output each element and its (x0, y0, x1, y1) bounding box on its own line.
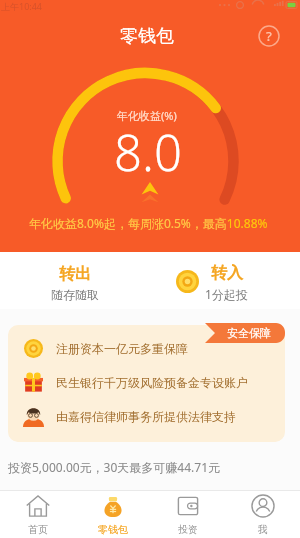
staticText: 上午10:44 (1, 0, 43, 11)
staticText: 随存随取 (51, 287, 99, 302)
staticText: 转入 (211, 263, 243, 283)
staticText: 由嘉得信律师事务所提供法律支持 (56, 409, 236, 424)
staticText: 民生银行千万级风险预备金专设账户 (56, 375, 248, 390)
button[interactable]: 零钱包 (75, 491, 150, 538)
button[interactable]: 帮助 (254, 21, 284, 51)
staticText: 注册资本一亿元多重保障 (56, 341, 188, 356)
button[interactable]: 转出 (0, 254, 150, 311)
staticText: 零钱包 (98, 523, 128, 536)
button[interactable]: 我 (225, 491, 300, 538)
staticText: ? (266, 27, 272, 45)
staticText: 年化收益8.0%起，每周涨0.5%，最高10.88% (29, 215, 268, 231)
staticText: 转出 (59, 264, 91, 284)
staticText: 投资5,000.00元，30天最多可赚44.71元 (8, 459, 221, 475)
button[interactable]: 转入 (150, 254, 300, 311)
staticText: 零钱包 (120, 25, 174, 48)
staticText: 我 (258, 523, 268, 536)
button[interactable]: 首页 (0, 491, 75, 538)
staticText: 首页 (28, 523, 48, 536)
staticText: 安全保障 (227, 326, 271, 340)
staticText: 8.0 (114, 119, 182, 173)
staticText: 投资 (178, 523, 198, 536)
staticText: 年化收益(%) (117, 108, 177, 123)
staticText: 1分起投 (205, 286, 248, 302)
button[interactable]: 投资 (150, 491, 225, 538)
